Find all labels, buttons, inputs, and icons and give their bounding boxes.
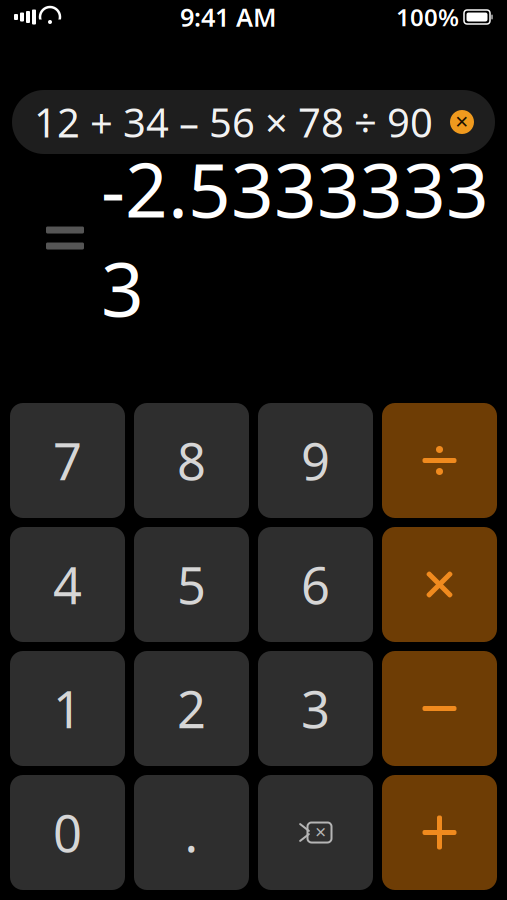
- staticText: 8: [177, 427, 206, 494]
- button[interactable]: .: [134, 775, 249, 890]
- button[interactable]: 0: [10, 775, 125, 890]
- button[interactable]: 6: [258, 527, 373, 642]
- staticText: 9:41 AM: [180, 0, 277, 34]
- staticText: 2: [177, 675, 206, 742]
- button[interactable]: Delete: [258, 775, 373, 890]
- staticText: 6: [301, 551, 330, 618]
- button[interactable]: 8: [134, 403, 249, 518]
- staticText: 1: [53, 675, 82, 742]
- button[interactable]: 4: [10, 527, 125, 642]
- staticText: -2.53333333: [101, 139, 489, 337]
- staticText: 100%: [396, 1, 459, 33]
- staticText: 3: [301, 675, 330, 742]
- staticText: 4: [53, 551, 82, 618]
- button[interactable]: 7: [10, 403, 125, 518]
- button[interactable]: 1: [10, 651, 125, 766]
- staticText: ✕: [314, 824, 326, 841]
- staticText: 0: [53, 799, 82, 866]
- button[interactable]: Divide: [382, 403, 497, 518]
- button[interactable]: Clear expression: [447, 107, 477, 137]
- button[interactable]: Multiply: [382, 527, 497, 642]
- staticText: ✕: [454, 112, 469, 132]
- button[interactable]: 5: [134, 527, 249, 642]
- staticText: .: [184, 799, 198, 866]
- button[interactable]: 2: [134, 651, 249, 766]
- button[interactable]: 3: [258, 651, 373, 766]
- button[interactable]: 9: [258, 403, 373, 518]
- button[interactable]: Subtract: [382, 651, 497, 766]
- button[interactable]: Add: [382, 775, 497, 890]
- staticText: 5: [177, 551, 206, 618]
- staticText: 12 + 34 – 56 × 78 ÷ 90: [34, 95, 433, 148]
- staticText: 9: [301, 427, 330, 494]
- staticText: 7: [53, 427, 82, 494]
